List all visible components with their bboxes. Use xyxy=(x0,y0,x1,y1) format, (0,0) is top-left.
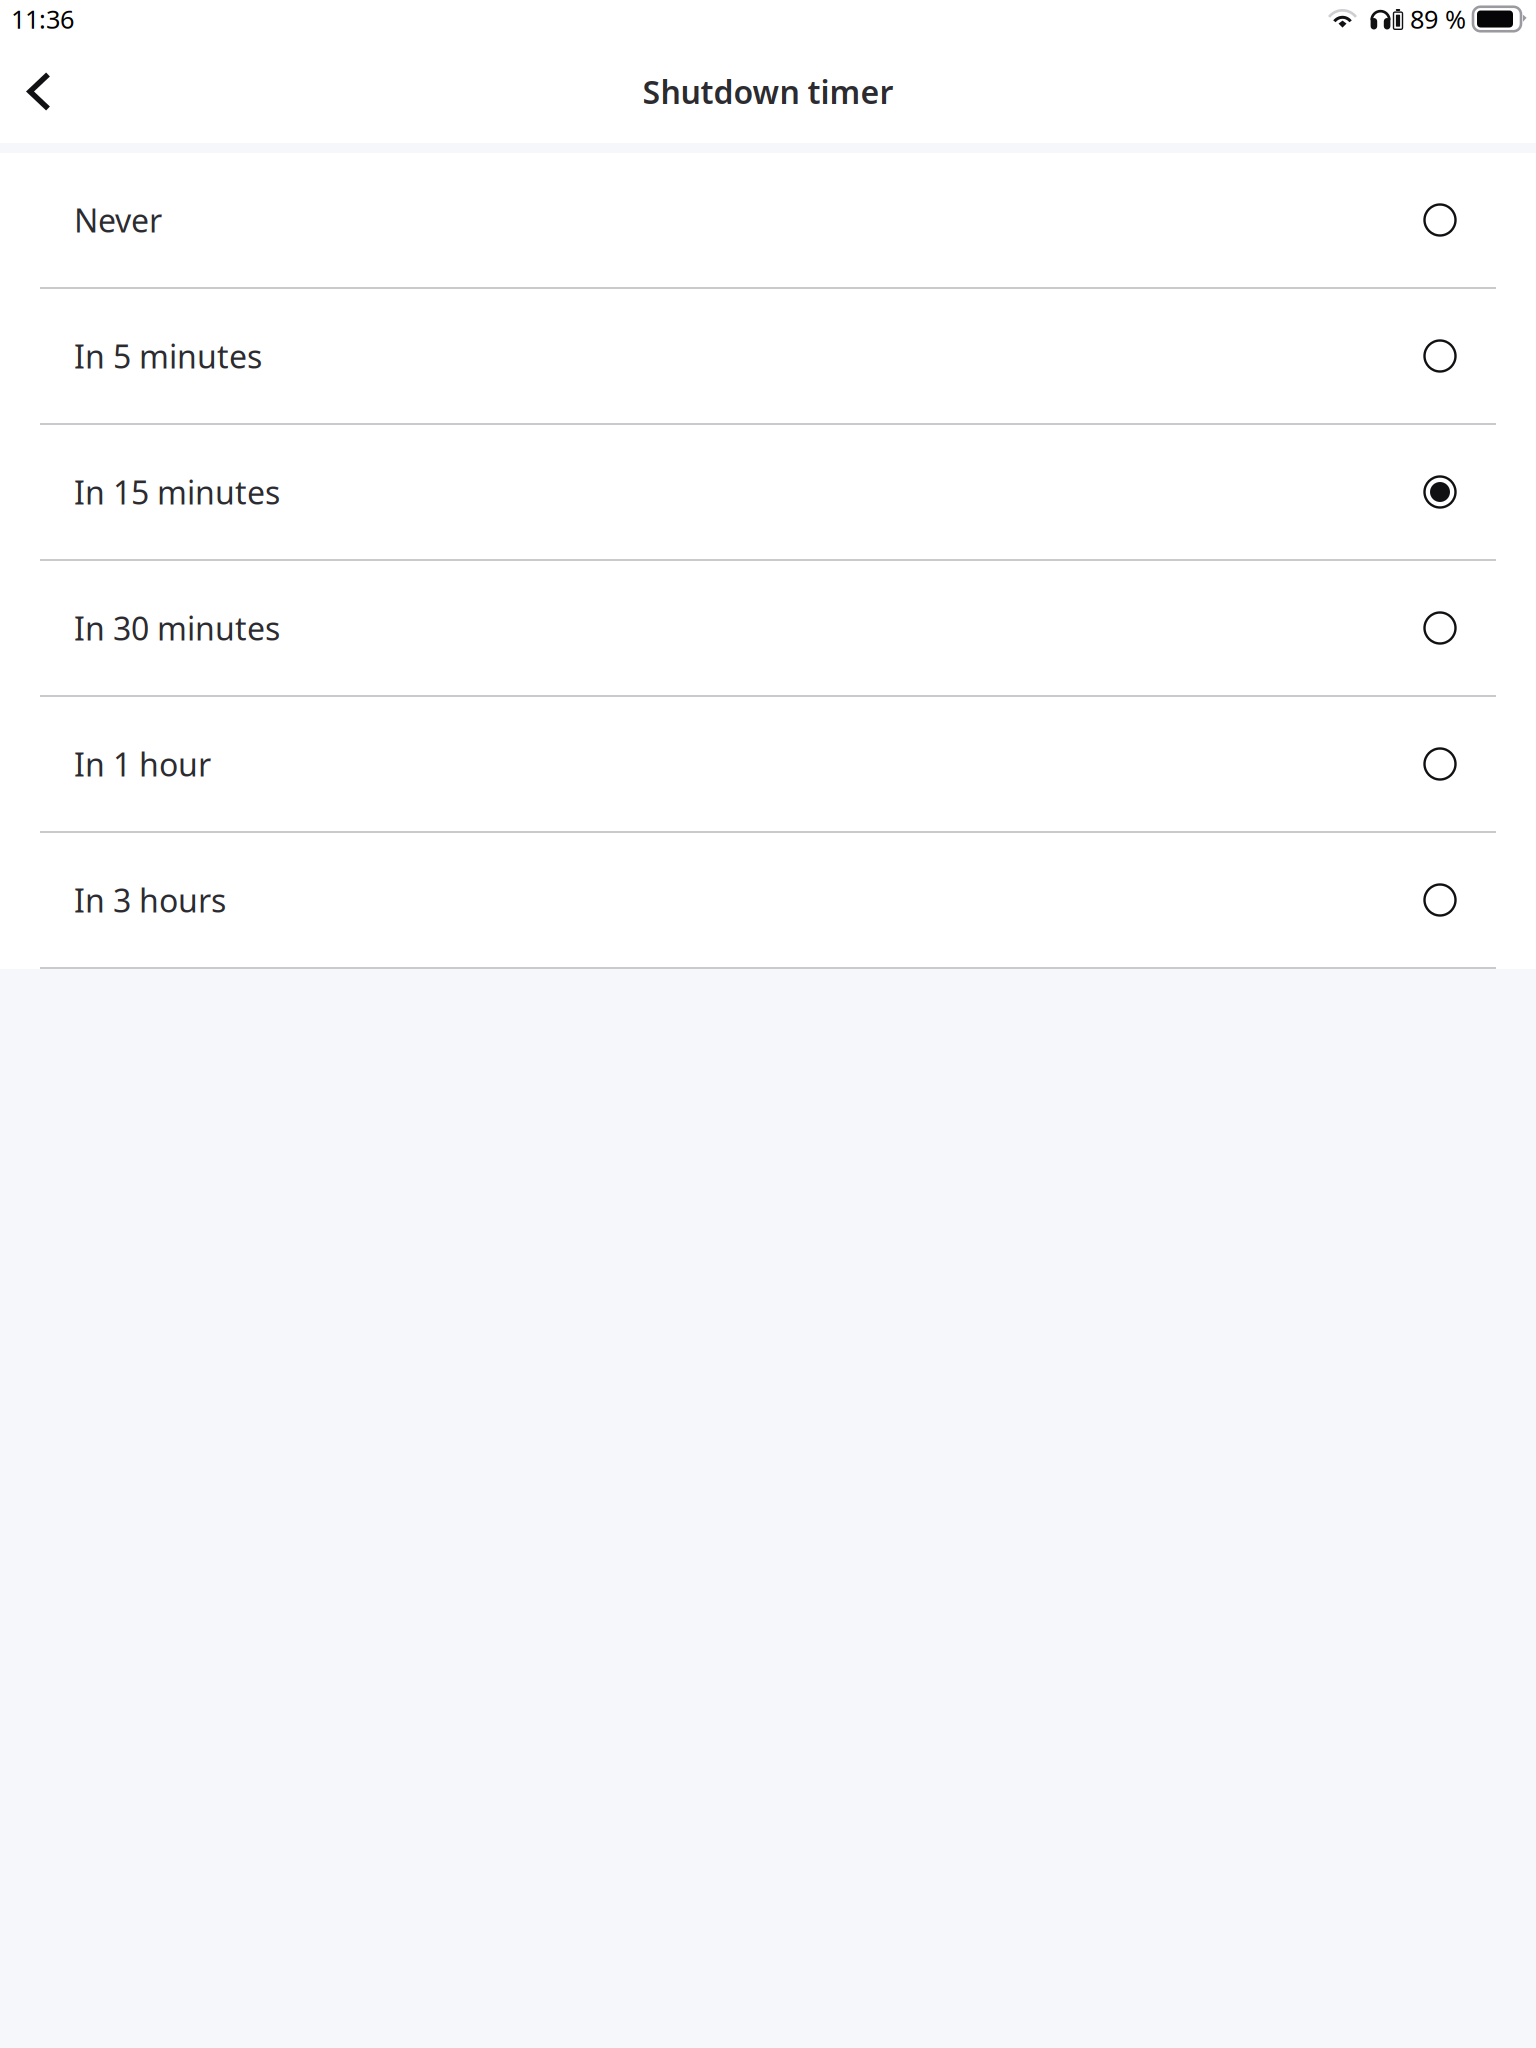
staticText: In 15 minutes xyxy=(74,471,280,513)
staticText: 11:36 xyxy=(11,2,74,36)
button[interactable]: Not selected xyxy=(0,833,1536,967)
button[interactable]: Not selected xyxy=(0,289,1536,423)
staticText: In 30 minutes xyxy=(74,607,280,649)
staticText: In 5 minutes xyxy=(74,335,262,377)
button[interactable]: Not selected xyxy=(0,153,1536,287)
button[interactable]: Not selected xyxy=(0,561,1536,695)
button[interactable]: Selected xyxy=(0,425,1536,559)
staticText: In 3 hours xyxy=(74,879,226,921)
button[interactable]: Not selected xyxy=(0,697,1536,831)
staticText: In 1 hour xyxy=(74,743,211,785)
staticText: Shutdown timer xyxy=(642,70,893,113)
button[interactable]: Back xyxy=(0,40,84,143)
staticText: 89 % xyxy=(1410,2,1466,36)
staticText: Never xyxy=(74,199,162,241)
